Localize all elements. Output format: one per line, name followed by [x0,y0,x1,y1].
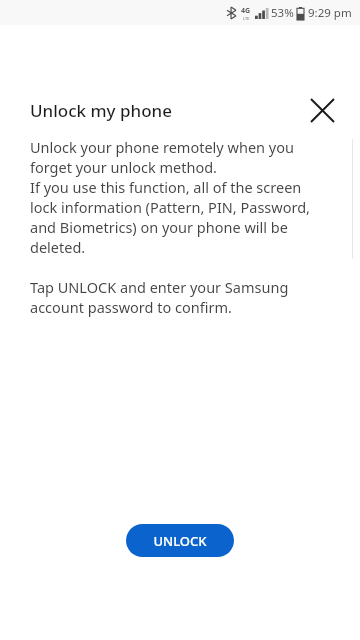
staticText: 9:29 pm [308,5,352,21]
staticText: and Biometrics) on your phone will be [30,217,288,237]
staticText: forget your unlock method. [30,157,218,177]
staticText: account password to confirm. [30,297,232,317]
staticText: LTE [243,16,250,21]
staticText: Unlock your phone remotely when you [30,137,294,157]
button[interactable]: UNLOCK [126,524,234,557]
staticText: lock information (Pattern, PIN, Password… [30,197,310,217]
staticText: Unlock my phone [30,99,172,122]
staticText: UNLOCK [153,532,207,550]
staticText: If you use this function, all of the scr… [30,177,302,197]
button[interactable]: Close [304,94,340,126]
staticText: deleted. [30,237,86,257]
staticText: 53% [271,5,294,21]
staticText: Tap UNLOCK and enter your Samsung [30,277,289,297]
staticText: 4G [241,6,251,16]
